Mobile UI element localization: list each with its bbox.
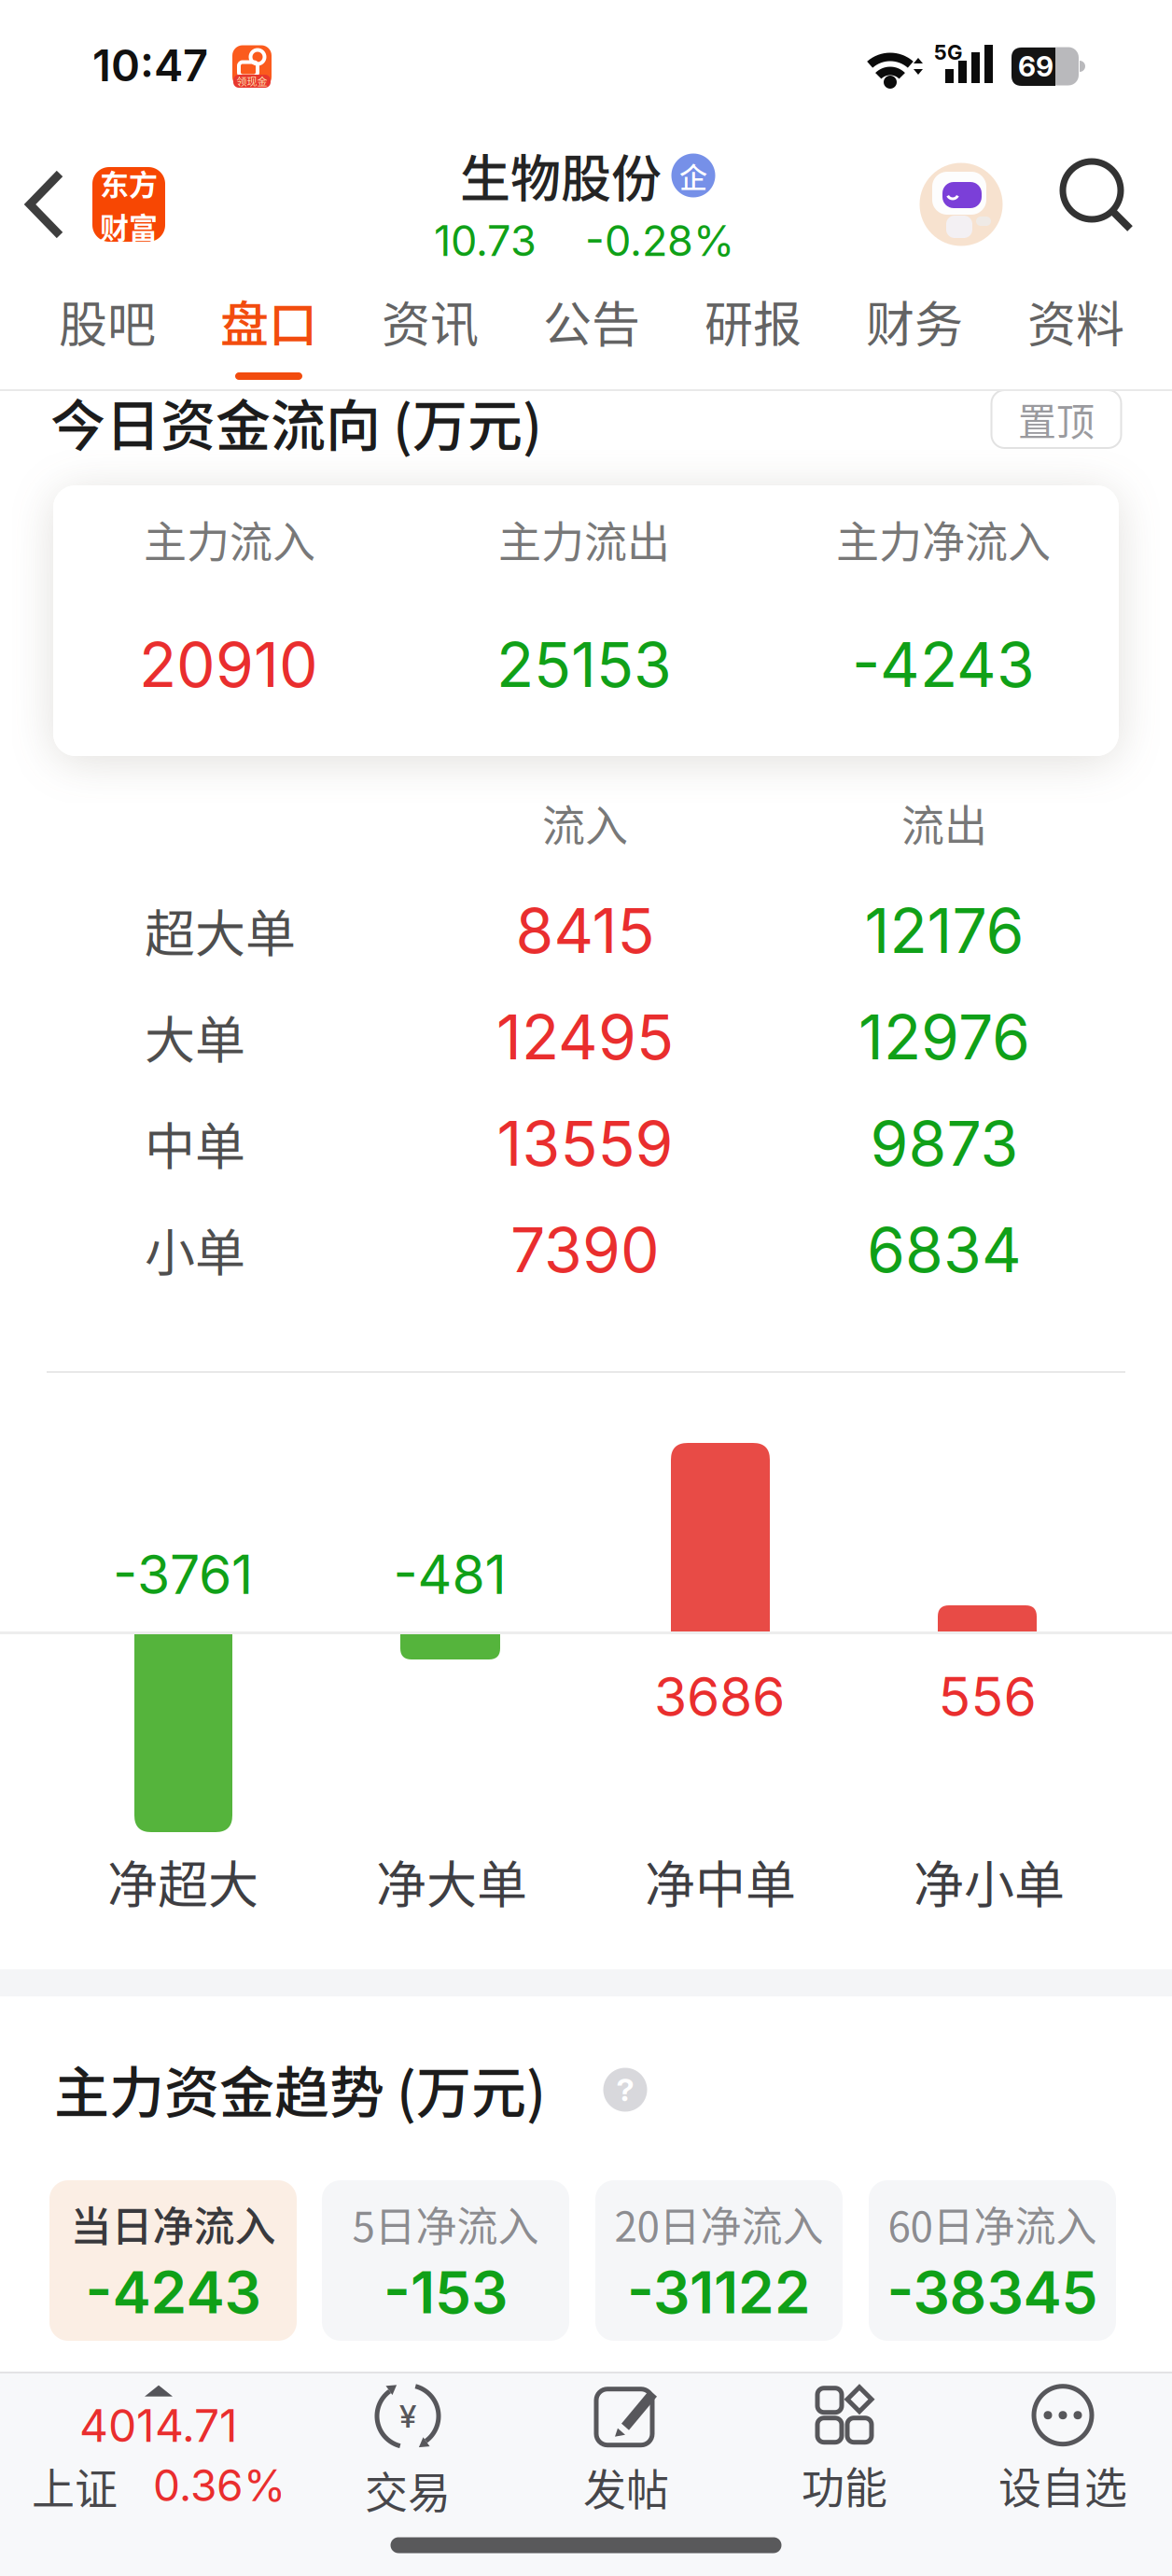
staticText: 10:47 <box>92 39 208 92</box>
staticText: 9873 <box>870 1106 1019 1181</box>
staticText: 25153 <box>496 627 672 702</box>
button[interactable]: 设自选 <box>998 2386 1127 2516</box>
button[interactable]: 研报 <box>678 274 828 368</box>
staticText: 主力流入 <box>144 507 315 570</box>
staticText: 东方 <box>100 162 158 204</box>
staticText: 主力流出 <box>498 507 670 570</box>
staticText: 13559 <box>497 1106 673 1181</box>
button[interactable]: Back <box>15 166 75 243</box>
button[interactable]: 5日净流入 <box>322 2180 569 2341</box>
staticText: 0.36% <box>153 2460 286 2512</box>
button[interactable]: 60日净流入 <box>869 2180 1116 2341</box>
staticText: 资料 <box>1027 286 1124 356</box>
button[interactable]: 20日净流入 <box>595 2180 843 2341</box>
staticText: -3761 <box>113 1542 253 1607</box>
staticText: 功能 <box>802 2453 887 2516</box>
button[interactable]: Search <box>1059 158 1136 234</box>
button[interactable]: 资讯 <box>356 274 505 368</box>
staticText: 超大单 <box>145 894 296 967</box>
staticText: 60日净流入 <box>888 2194 1097 2253</box>
staticText: -481 <box>393 1542 506 1607</box>
staticText: 股吧 <box>59 286 156 356</box>
staticText: 置顶 <box>1018 391 1095 447</box>
staticText: -38345 <box>887 2257 1098 2327</box>
staticText: 净中单 <box>645 1845 796 1918</box>
staticText: 流出 <box>901 791 987 853</box>
button[interactable]: 交易 <box>365 2382 451 2520</box>
button[interactable]: 置顶 <box>991 390 1121 448</box>
button[interactable]: 智能助手 <box>920 163 1003 246</box>
staticText: 8415 <box>516 893 655 968</box>
staticText: 净大单 <box>376 1845 527 1918</box>
staticText: 交易 <box>365 2458 451 2520</box>
button[interactable]: 盘口 <box>194 274 343 368</box>
staticText: 小单 <box>145 1213 245 1286</box>
staticText: 财务 <box>866 286 963 356</box>
button[interactable]: 当日净流入 <box>49 2180 297 2341</box>
staticText: 5日净流入 <box>352 2194 539 2253</box>
button[interactable]: 财务 <box>840 274 989 368</box>
staticText: 领现金 <box>237 74 267 89</box>
staticText: -31122 <box>627 2257 811 2327</box>
staticText: 研报 <box>705 286 802 356</box>
button[interactable]: 资料 <box>1001 274 1151 368</box>
staticText: 流入 <box>542 791 628 853</box>
staticText: 净小单 <box>914 1845 1065 1918</box>
button[interactable]: 4014.71 <box>32 2385 286 2517</box>
staticText: ¥ <box>399 2397 416 2435</box>
staticText: 当日净流入 <box>70 2194 276 2253</box>
staticText: 主力净流入 <box>836 507 1051 570</box>
staticText: 资讯 <box>382 286 479 356</box>
staticText: 财富 <box>100 205 158 247</box>
staticText: -4243 <box>852 627 1035 702</box>
staticText: 3686 <box>654 1665 785 1729</box>
staticText: 设自选 <box>998 2453 1127 2516</box>
staticText: 69 <box>1018 49 1053 83</box>
staticText: 20日净流入 <box>614 2194 823 2253</box>
button[interactable]: 东方财富 <box>92 162 165 247</box>
staticText: 中单 <box>145 1107 245 1180</box>
button[interactable]: 股吧 <box>33 274 182 368</box>
staticText: 企 <box>679 155 707 196</box>
staticText: -4243 <box>85 2257 261 2327</box>
staticText: 净超大 <box>107 1845 258 1918</box>
staticText: 10.73 -0.28% <box>434 215 734 266</box>
staticText: 盘口 <box>220 286 317 356</box>
staticText: -153 <box>384 2257 508 2327</box>
staticText: 556 <box>938 1665 1036 1729</box>
staticText: 4014.71 <box>79 2398 238 2453</box>
staticText: ? <box>616 2071 634 2109</box>
staticText: 12495 <box>496 1000 674 1074</box>
staticText: 12976 <box>858 1000 1030 1074</box>
staticText: 7390 <box>510 1212 660 1287</box>
staticText: 今日资金流向 (万元) <box>50 382 542 462</box>
staticText: 公告 <box>543 286 640 356</box>
staticText: 12176 <box>865 893 1024 968</box>
button[interactable]: 发帖 <box>583 2381 669 2517</box>
staticText: 上证 <box>32 2454 118 2517</box>
staticText: 生物股份 <box>460 139 662 212</box>
button[interactable]: 公告 <box>517 274 666 368</box>
button[interactable]: 功能 <box>802 2386 887 2516</box>
staticText: 大单 <box>145 1000 245 1073</box>
staticText: 5G <box>934 40 962 65</box>
staticText: 20910 <box>139 627 318 702</box>
staticText: 6834 <box>867 1212 1022 1287</box>
staticText: 主力资金趋势 (万元) <box>54 2049 546 2129</box>
staticText: 发帖 <box>583 2455 669 2517</box>
